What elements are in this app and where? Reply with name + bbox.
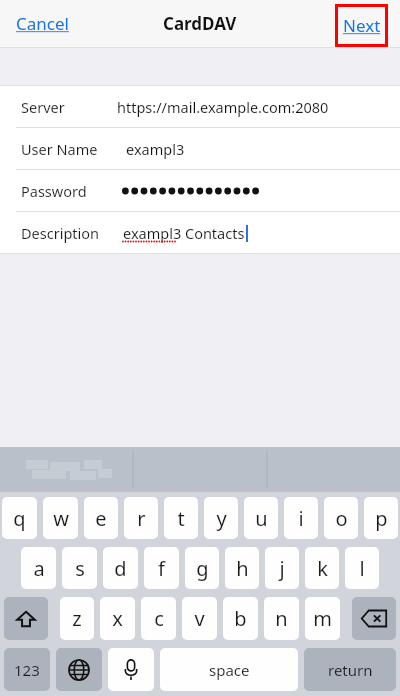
staticText: CardDAV xyxy=(163,12,237,35)
staticText: o xyxy=(335,505,348,532)
staticText: g xyxy=(196,555,209,582)
staticText: i xyxy=(298,505,304,532)
staticText: 123 xyxy=(14,660,40,680)
button[interactable]: Backspace xyxy=(352,597,396,640)
button[interactable]: k xyxy=(305,547,339,589)
button[interactable]: f xyxy=(144,547,179,589)
button[interactable]: Dictate xyxy=(108,648,154,691)
button[interactable]: e xyxy=(84,497,118,539)
staticText: e xyxy=(95,505,107,532)
staticText: exampl3 Contacts xyxy=(123,223,245,243)
staticText: exampl3 xyxy=(126,139,185,159)
button[interactable]: 123 xyxy=(4,648,50,691)
button[interactable]: w xyxy=(43,497,78,539)
button[interactable]: l xyxy=(345,547,379,589)
button[interactable]: Server xyxy=(0,86,400,127)
staticText: z xyxy=(72,605,82,632)
button[interactable]: Change keyboard language xyxy=(56,648,102,691)
staticText: Cancel xyxy=(16,12,69,35)
staticText: x xyxy=(112,605,123,632)
button[interactable]: q xyxy=(2,497,37,539)
button[interactable]: d xyxy=(103,547,138,589)
button[interactable]: Description xyxy=(0,212,400,253)
button[interactable]: Shift xyxy=(4,597,48,640)
button[interactable]: User Name xyxy=(0,128,400,169)
button[interactable]: Cancel xyxy=(8,6,77,41)
button[interactable]: m xyxy=(305,597,340,640)
button[interactable]: r xyxy=(124,497,158,539)
staticText: k xyxy=(317,555,328,582)
button[interactable]: c xyxy=(141,597,176,640)
button[interactable]: v xyxy=(182,597,217,640)
button[interactable]: x xyxy=(100,597,135,640)
staticText: p xyxy=(375,505,388,532)
button[interactable]: return xyxy=(304,648,396,691)
staticText: Password xyxy=(21,181,87,201)
staticText: v xyxy=(194,605,205,632)
staticText: l xyxy=(359,555,365,582)
button[interactable]: Suggestion xyxy=(26,460,116,480)
staticText: y xyxy=(216,505,227,532)
staticText: f xyxy=(158,555,165,582)
button[interactable]: y xyxy=(204,497,238,539)
staticText: j xyxy=(279,555,285,582)
staticText: space xyxy=(209,660,250,680)
button[interactable]: Password xyxy=(0,170,400,211)
staticText: c xyxy=(154,605,164,632)
staticText: t xyxy=(177,505,185,532)
staticText: Description xyxy=(21,223,100,243)
button[interactable]: i xyxy=(284,497,318,539)
button[interactable]: h xyxy=(225,547,259,589)
button[interactable]: z xyxy=(60,597,94,640)
staticText: w xyxy=(53,505,69,532)
staticText: Next xyxy=(343,14,381,37)
staticText: b xyxy=(234,605,247,632)
staticText: a xyxy=(33,555,45,582)
staticText: User Name xyxy=(21,139,98,159)
button[interactable]: Next xyxy=(335,4,388,47)
button[interactable]: a xyxy=(21,547,56,589)
button[interactable]: s xyxy=(62,547,97,589)
button[interactable]: u xyxy=(244,497,278,539)
button[interactable]: p xyxy=(364,497,398,539)
staticText: return xyxy=(328,660,373,680)
button[interactable]: o xyxy=(324,497,358,539)
staticText: u xyxy=(255,505,268,532)
button[interactable]: space xyxy=(160,648,298,691)
staticText: n xyxy=(275,605,288,632)
staticText: d xyxy=(114,555,127,582)
staticText: r xyxy=(137,505,146,532)
staticText: h xyxy=(236,555,249,582)
staticText: q xyxy=(13,505,26,532)
button[interactable]: t xyxy=(164,497,198,539)
staticText: Server xyxy=(21,97,65,117)
button[interactable]: j xyxy=(265,547,299,589)
button[interactable]: b xyxy=(223,597,258,640)
staticText: https://mail.example.com:2080 xyxy=(117,97,329,117)
button[interactable]: g xyxy=(185,547,219,589)
button[interactable]: n xyxy=(264,597,299,640)
staticText: s xyxy=(75,555,85,582)
staticText: m xyxy=(313,605,332,632)
